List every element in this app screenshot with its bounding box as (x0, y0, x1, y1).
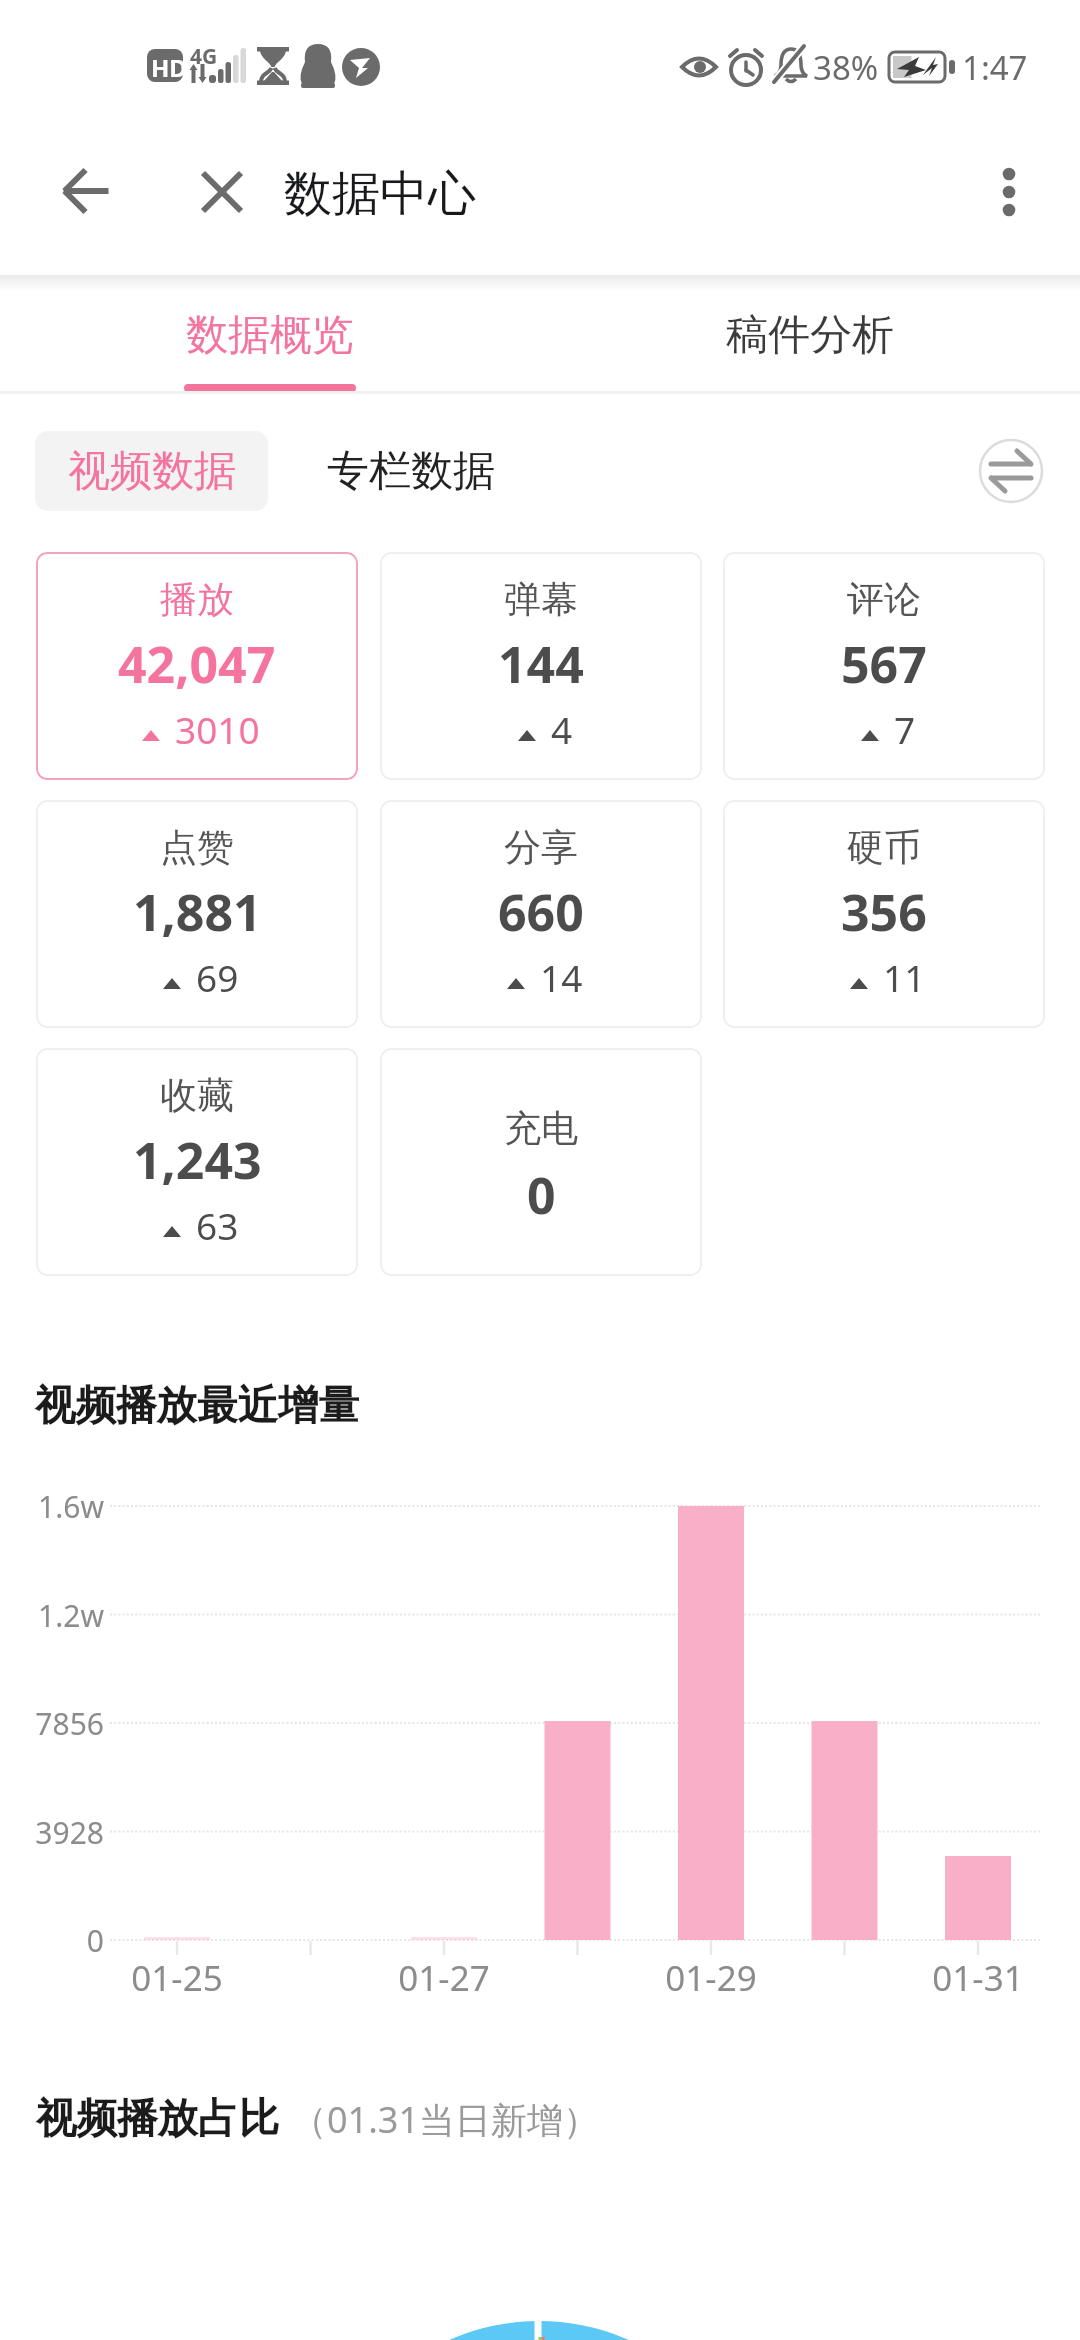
button[interactable]: More options (967, 150, 1051, 234)
staticText: 1.2w (0, 1595, 104, 1636)
staticText: HD (151, 51, 187, 84)
staticText: 充电 (504, 1105, 578, 1152)
staticText: 3928 (0, 1812, 104, 1853)
staticText: 数据概览 (186, 309, 354, 362)
staticText: 42,047 (118, 630, 276, 698)
staticText: 01-25 (87, 1954, 267, 2002)
staticText: 69 (196, 952, 239, 1002)
button[interactable]: 点赞 (36, 800, 358, 1028)
staticText: 63 (196, 1200, 239, 1250)
staticText: 弹幕 (504, 576, 578, 623)
button[interactable]: 视频数据 (35, 431, 268, 511)
button[interactable]: 收藏 (36, 1048, 358, 1276)
staticText: 专栏数据 (327, 445, 495, 498)
staticText: 点赞 (160, 824, 234, 871)
staticText: 1.6w (0, 1486, 104, 1527)
button[interactable]: 稿件分析 (540, 291, 1080, 393)
staticText: 稿件分析 (726, 309, 894, 362)
staticText: 38% (813, 45, 879, 90)
staticText: 1:47 (962, 45, 1028, 90)
button[interactable]: 评论 (723, 552, 1045, 780)
button[interactable]: Swap data type (979, 439, 1043, 503)
staticText: 660 (498, 878, 584, 946)
staticText: 01-31 (888, 1954, 1068, 2002)
staticText: 视频数据 (68, 445, 236, 498)
button[interactable]: 充电 (380, 1048, 702, 1276)
button[interactable]: Close (180, 150, 264, 234)
staticText: 分享 (504, 824, 578, 871)
staticText: （01.31当日新增） (291, 2095, 600, 2144)
staticText: 144 (498, 630, 584, 698)
staticText: 视频播放最近增量 (35, 1380, 359, 1431)
staticText: 01-29 (621, 1954, 801, 2002)
staticText: 0 (527, 1161, 556, 1229)
button[interactable]: 播放 (36, 552, 358, 780)
staticText: 评论 (847, 576, 921, 623)
staticText: 4G (190, 42, 218, 71)
button[interactable]: 分享 (380, 800, 702, 1028)
button[interactable]: 弹幕 (380, 552, 702, 780)
button[interactable]: Back (44, 149, 128, 233)
staticText: 0 (0, 1920, 104, 1961)
staticText: 收藏 (160, 1072, 234, 1119)
staticText: 4 (551, 704, 573, 754)
button[interactable]: 硬币 (723, 800, 1045, 1028)
staticText: 播放 (160, 576, 234, 623)
button[interactable]: 数据概览 (0, 291, 540, 393)
staticText: 01-27 (354, 1954, 534, 2002)
staticText: 11 (883, 952, 926, 1002)
staticText: 7856 (0, 1703, 104, 1744)
staticText: 硬币 (847, 824, 921, 871)
staticText: 1,243 (133, 1126, 262, 1194)
staticText: 356 (841, 878, 927, 946)
staticText: 567 (841, 630, 927, 698)
button[interactable]: 专栏数据 (301, 431, 521, 511)
staticText: 14 (540, 952, 583, 1002)
staticText: 1,881 (133, 878, 262, 946)
staticText: 7 (894, 704, 916, 754)
staticText: 数据中心 (284, 164, 476, 224)
staticText: 3010 (175, 704, 260, 754)
staticText: 视频播放占比 (36, 2093, 279, 2144)
